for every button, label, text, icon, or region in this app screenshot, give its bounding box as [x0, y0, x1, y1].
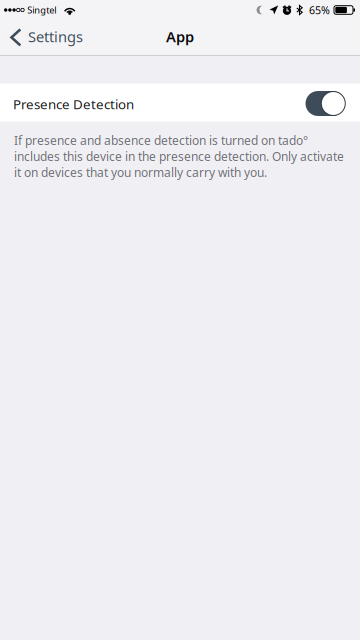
staticText: Singtel: [27, 4, 56, 16]
staticText: App: [166, 27, 194, 46]
button[interactable]: Presence Detection: [0, 83, 360, 121]
staticText: If presence and absence detection is tur…: [14, 132, 344, 180]
staticText: 65%: [309, 3, 330, 17]
staticText: Presence Detection: [13, 95, 134, 113]
staticText: Settings: [28, 27, 83, 46]
button[interactable]: Settings: [0, 20, 93, 55]
